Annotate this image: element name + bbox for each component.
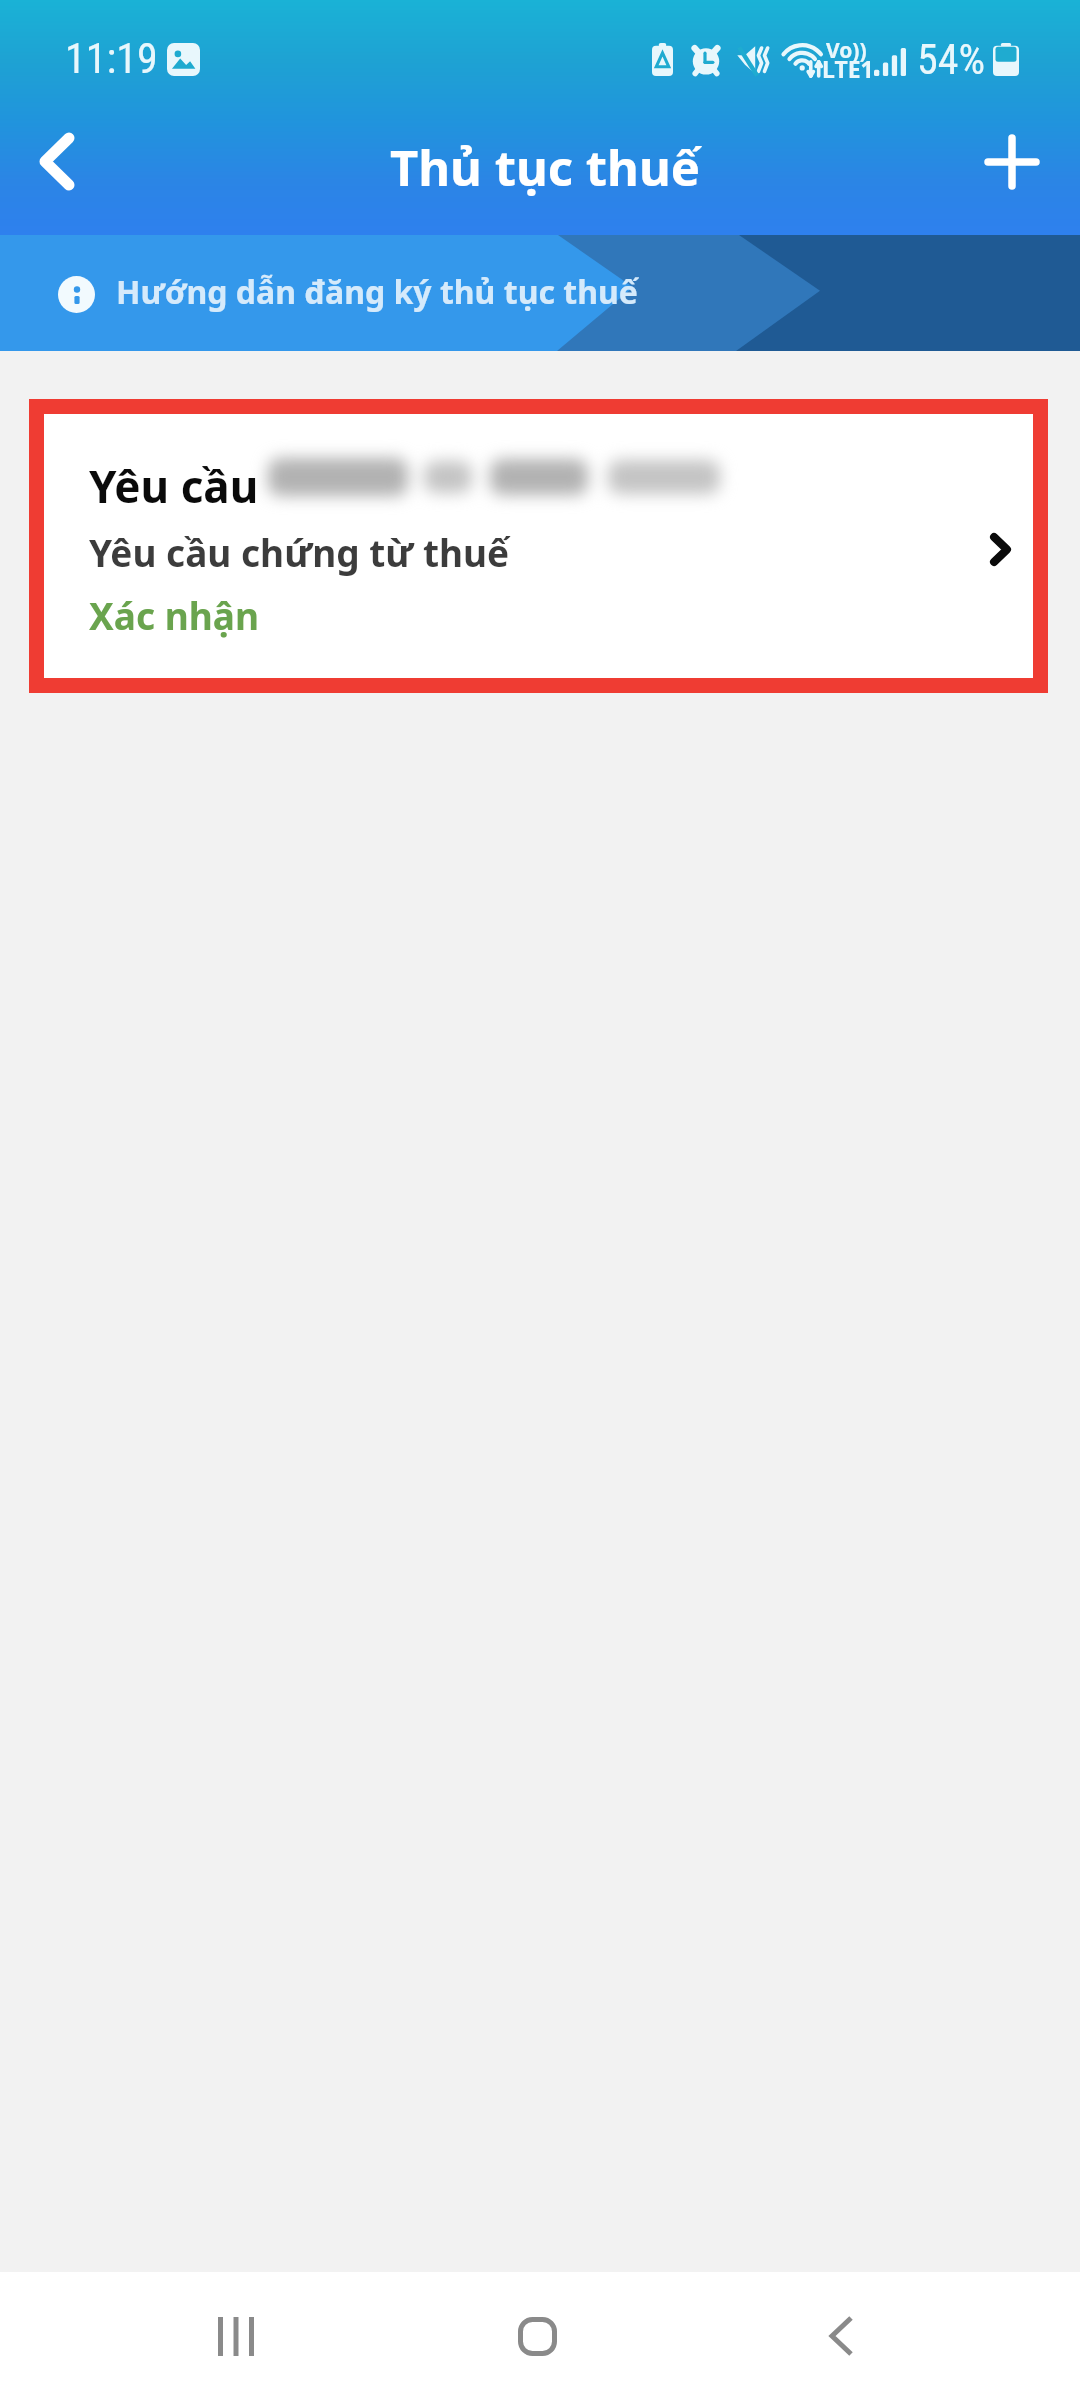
staticText: Yêu cầu chứng từ thuế (89, 527, 510, 577)
button[interactable]: Yêu cầu (44, 414, 1033, 678)
staticText: Thủ tục thuế (390, 134, 701, 201)
staticText: LTE1 (822, 53, 874, 84)
staticText: Hướng dẫn đăng ký thủ tục thuế (116, 270, 638, 314)
staticText: Xác nhận (89, 590, 259, 640)
staticText: 11:19 (65, 34, 158, 83)
staticText: Vo)) (826, 36, 867, 65)
button[interactable]: Add (957, 107, 1067, 217)
button[interactable]: Back (2, 106, 112, 216)
button[interactable]: Recent apps (186, 2286, 286, 2386)
button[interactable]: Hướng dẫn đăng ký thủ tục thuế (0, 235, 1080, 351)
button[interactable]: Back (791, 2286, 891, 2386)
staticText: Yêu cầu (89, 456, 259, 516)
button[interactable]: Home (487, 2286, 587, 2386)
staticText: 54% (917, 35, 986, 77)
